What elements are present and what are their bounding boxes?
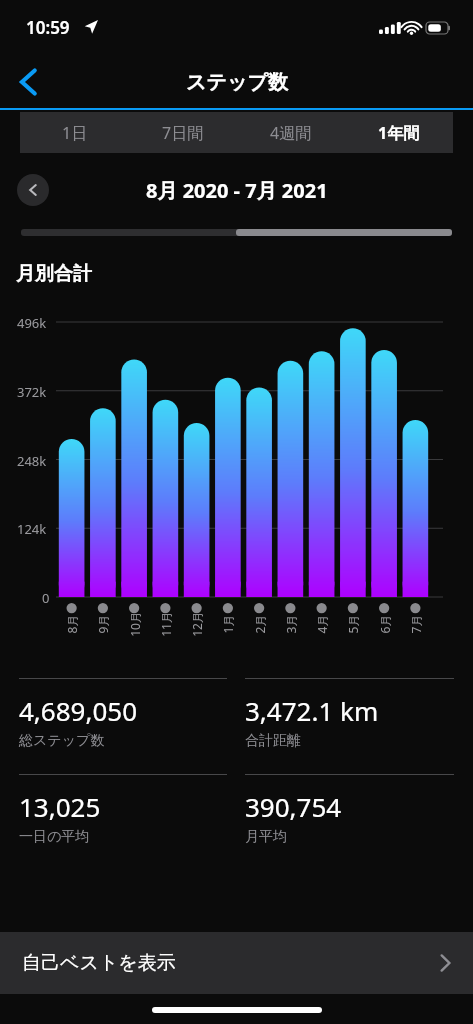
staticText: 390,754 — [245, 789, 342, 824]
staticText: 496k — [17, 314, 47, 332]
staticText: 7月 — [407, 614, 423, 633]
staticText: 合計距離 — [245, 732, 301, 750]
staticText: 総ステップ数 — [19, 732, 105, 750]
button[interactable]: 戻る — [6, 60, 50, 104]
staticText: 6月 — [376, 614, 392, 633]
staticText: 9月 — [94, 614, 110, 633]
staticText: 1年間 — [378, 122, 420, 144]
staticText: 248k — [17, 452, 47, 470]
staticText: 1月 — [219, 614, 235, 633]
staticText: 13,025 — [19, 789, 101, 824]
button[interactable]: 4週間 — [237, 112, 345, 153]
staticText: 8月 2020 - 7月 2021 — [146, 177, 328, 204]
staticText: 4月 — [313, 614, 329, 633]
button[interactable]: 自己ベストを表示 — [0, 932, 473, 994]
staticText: 1日 — [62, 122, 88, 144]
staticText: 2月 — [251, 614, 267, 633]
staticText: 月平均 — [245, 828, 287, 846]
staticText: 11月 — [158, 611, 174, 637]
staticText: 7日間 — [162, 122, 204, 144]
staticText: 0 — [42, 589, 50, 607]
button[interactable]: 1年間 — [345, 112, 453, 153]
button[interactable]: 7日間 — [129, 112, 237, 153]
staticText: 3,472.1 km — [245, 693, 379, 728]
staticText: 8月 — [63, 614, 79, 633]
button[interactable]: 前の期間 — [17, 174, 49, 206]
staticText: 3月 — [282, 614, 298, 633]
staticText: 5月 — [344, 614, 360, 633]
staticText: 124k — [17, 520, 47, 538]
staticText: 自己ベストを表示 — [22, 951, 176, 975]
staticText: 10:59 — [26, 16, 70, 39]
staticText: ステップ数 — [186, 70, 288, 95]
staticText: 4,689,050 — [19, 693, 138, 728]
button[interactable]: 1日 — [20, 112, 129, 153]
staticText: 12月 — [189, 611, 205, 637]
staticText: 月別合計 — [16, 262, 92, 286]
staticText: 10月 — [127, 611, 143, 637]
staticText: 4週間 — [270, 122, 312, 144]
staticText: 372k — [17, 383, 47, 401]
staticText: 一日の平均 — [19, 828, 90, 846]
